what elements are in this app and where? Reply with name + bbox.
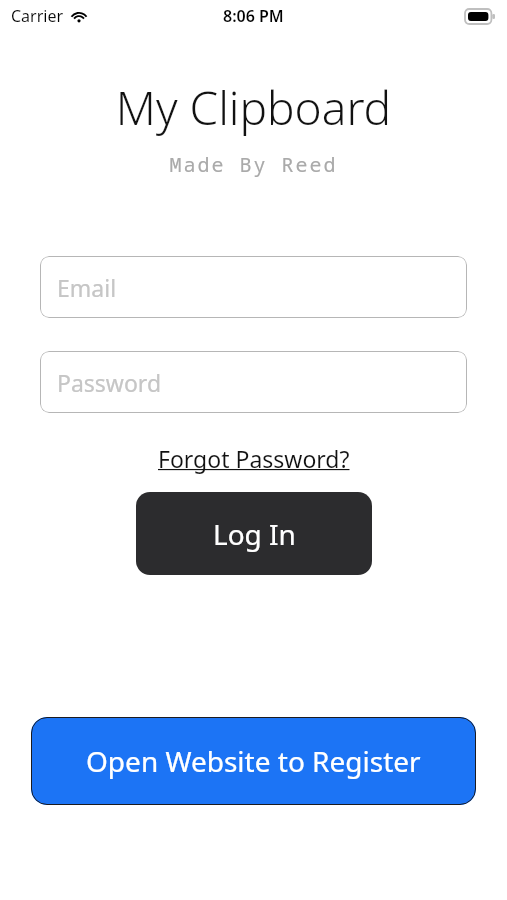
staticText: Open Website to Register (86, 742, 421, 780)
button[interactable]: Email (40, 256, 467, 318)
staticText: Email (57, 272, 117, 303)
staticText: Password (57, 367, 162, 398)
staticText: Forgot Password? (158, 443, 350, 474)
staticText: Carrier (11, 5, 64, 27)
staticText: Log In (213, 515, 296, 553)
staticText: My Clipboard (0, 76, 507, 139)
button[interactable]: Log In (136, 492, 372, 575)
staticText: Made By Reed (0, 151, 507, 178)
button[interactable]: Password (40, 351, 467, 413)
staticText: 8:06 PM (223, 5, 284, 27)
button[interactable]: Forgot Password? (154, 441, 354, 476)
other: Battery full (465, 9, 495, 24)
button[interactable]: Open Website to Register (31, 717, 476, 805)
